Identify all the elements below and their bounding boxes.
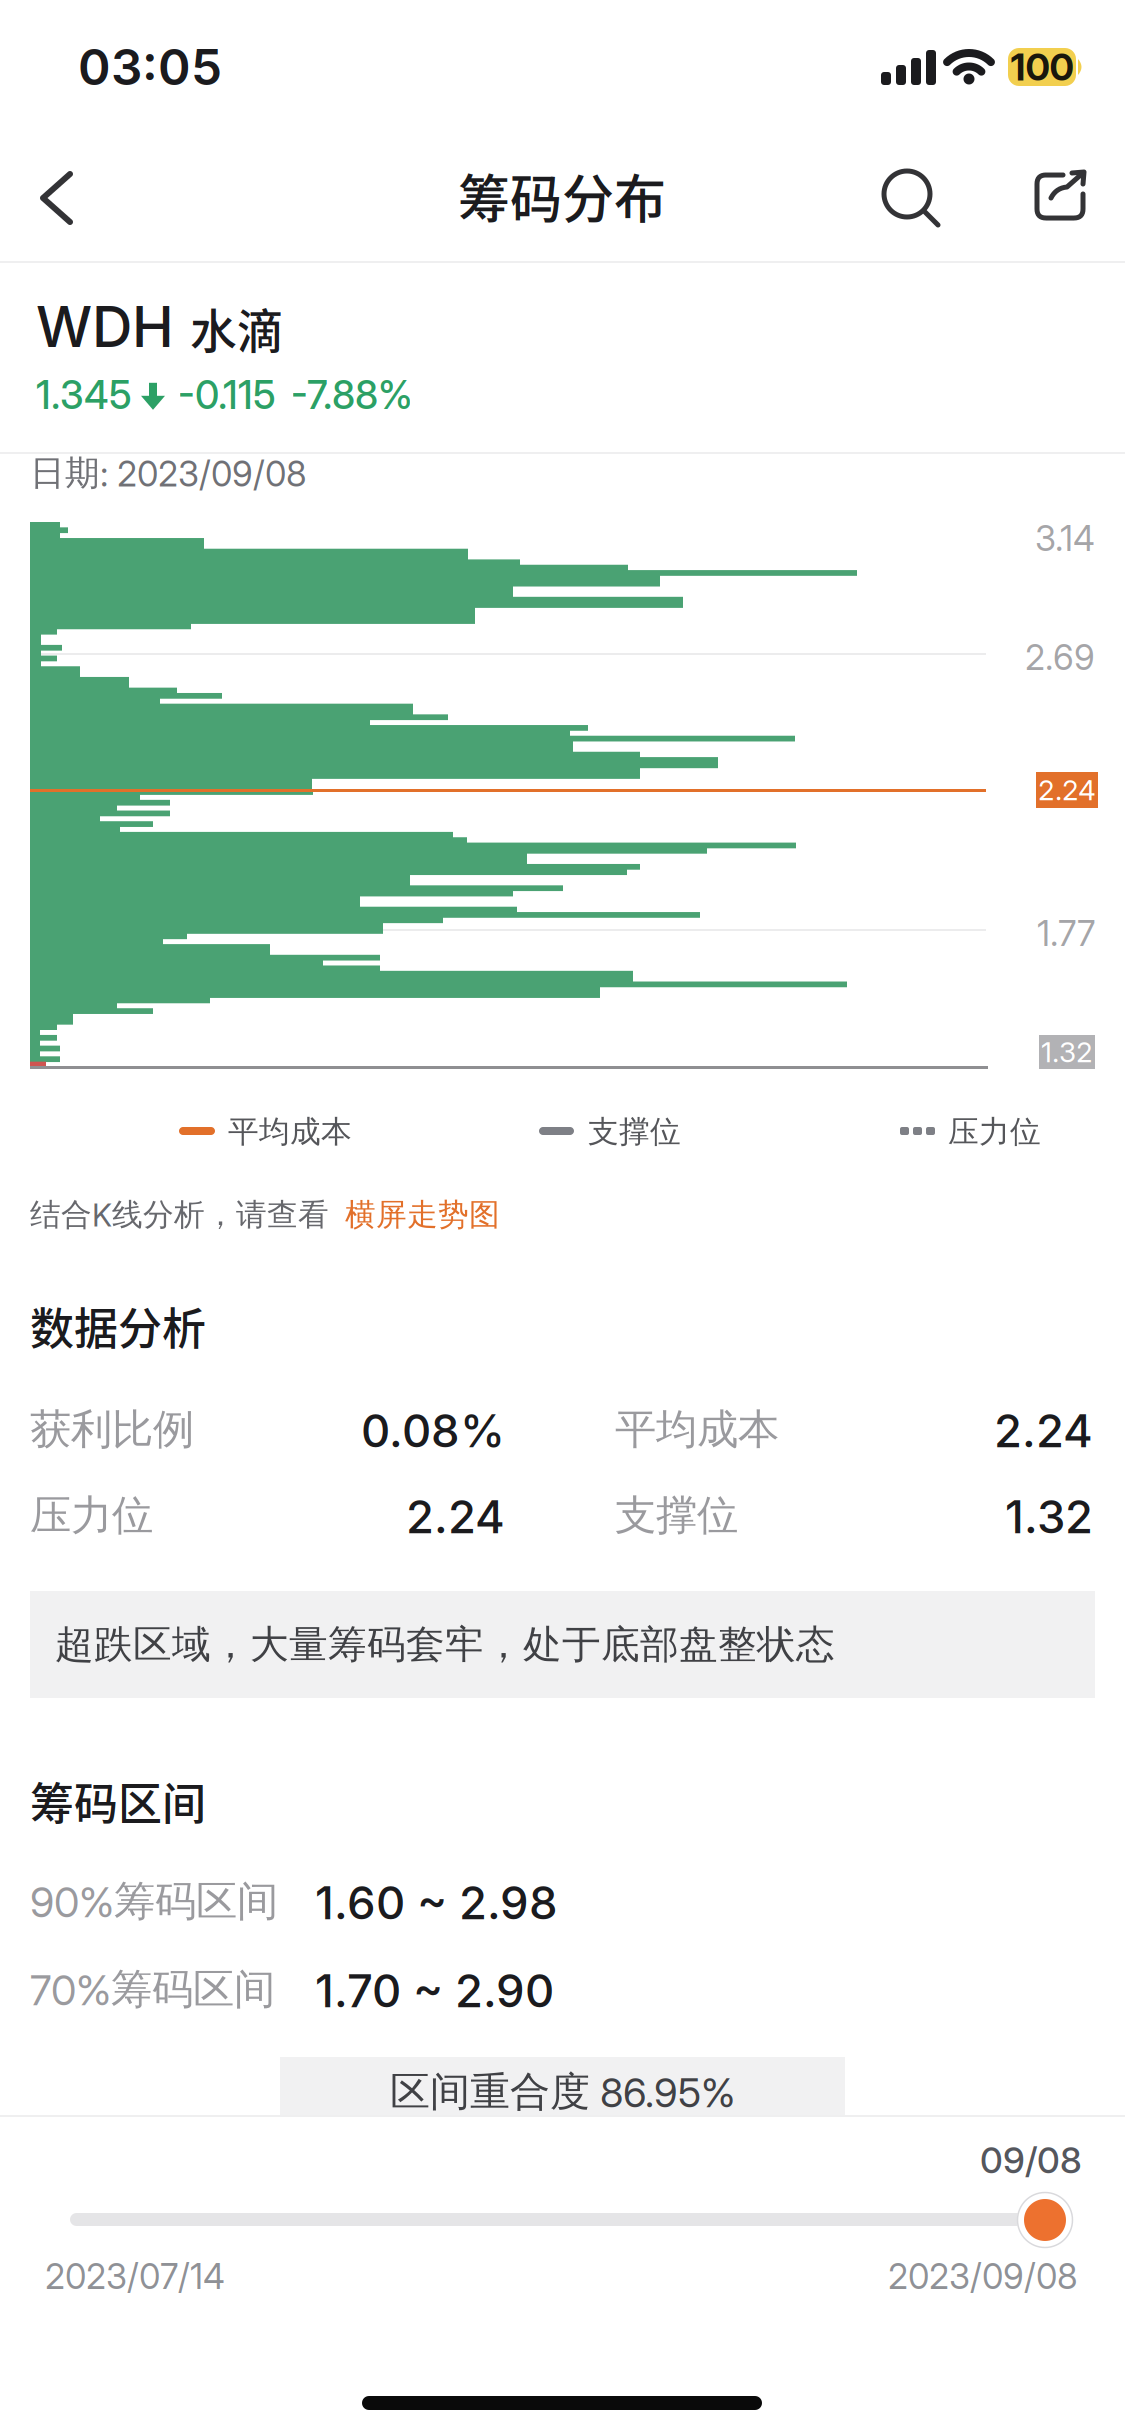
staticText: 2.24: [994, 1404, 1093, 1457]
staticText: -7.88%: [291, 372, 413, 418]
staticText: 1.60 ~ 2.98: [315, 1876, 558, 1929]
staticText: 0.08%: [361, 1404, 505, 1457]
staticText: 2.24: [1038, 773, 1096, 806]
staticText: 1.32: [1041, 1035, 1093, 1068]
staticText: WDH: [36, 293, 174, 360]
staticText: 日期: 2023/09/08: [30, 452, 307, 495]
staticText: 筹码分布: [458, 158, 666, 233]
staticText: 区间重合度 86.95%: [390, 2067, 735, 2116]
staticText: 3.14: [1035, 518, 1095, 559]
staticText: 1.77: [1037, 913, 1095, 954]
staticText: 支撑位: [615, 1490, 738, 1541]
button[interactable]: 横屏走势图: [345, 1196, 500, 1234]
staticText: 09/08: [980, 2139, 1082, 2181]
button[interactable]: 分享: [1018, 156, 1108, 240]
staticText: 压力位: [30, 1490, 153, 1541]
staticText: 数据分析: [30, 1294, 206, 1358]
staticText: 结合K线分析，请查看: [30, 1196, 329, 1234]
staticText: 2.24: [406, 1490, 505, 1543]
staticText: 支撑位: [588, 1113, 681, 1151]
staticText: 平均成本: [615, 1404, 779, 1455]
staticText: 1.345: [36, 372, 132, 418]
staticText: 1.70 ~ 2.90: [315, 1964, 554, 2017]
staticText: 1.32: [1005, 1490, 1093, 1543]
staticText: 2.69: [1025, 637, 1095, 678]
staticText: 获利比例: [30, 1404, 194, 1455]
button[interactable]: 返回: [12, 156, 112, 240]
staticText: 水滴: [190, 294, 284, 362]
staticText: 2023/09/08: [888, 2256, 1078, 2297]
staticText: 70%筹码区间: [30, 1964, 275, 2015]
staticText: 筹码区间: [30, 1769, 206, 1833]
staticText: 03:05: [78, 38, 222, 96]
staticText: 2023/07/14: [45, 2256, 225, 2297]
staticText: 100: [1010, 45, 1073, 89]
staticText: 90%筹码区间: [30, 1876, 278, 1927]
button[interactable]: 日期滑块: [1016, 2191, 1074, 2249]
staticText: 压力位: [948, 1113, 1041, 1151]
staticText: -0.115: [178, 372, 276, 418]
staticText: 平均成本: [228, 1113, 352, 1151]
button[interactable]: 搜索: [866, 156, 956, 240]
staticText: 超跌区域，大量筹码套牢，处于底部盘整状态: [55, 1621, 835, 1668]
staticText: 横屏走势图: [345, 1196, 500, 1234]
